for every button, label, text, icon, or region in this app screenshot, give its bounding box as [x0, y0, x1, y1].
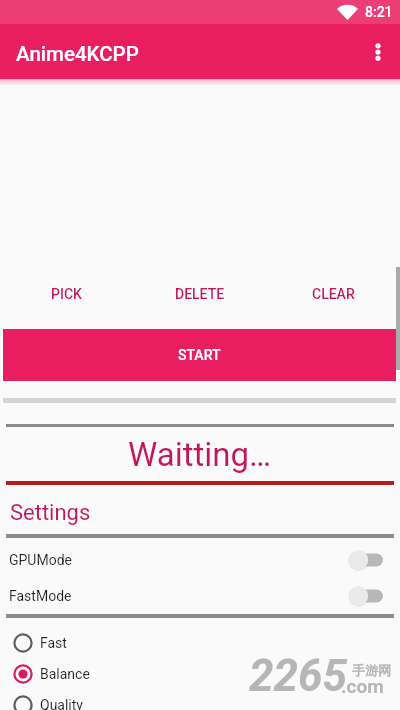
staticText: 8:21 [365, 4, 393, 20]
button[interactable]: PICK [0, 272, 133, 315]
button[interactable]: DELETE [133, 272, 266, 315]
staticText: Balance [40, 666, 90, 682]
button[interactable]: Balance [0, 659, 400, 688]
button[interactable]: Fast [0, 628, 400, 657]
button[interactable]: Quality [0, 690, 400, 710]
staticText: START [178, 347, 221, 363]
staticText: GPUMode [9, 552, 72, 568]
staticText: Settings [10, 500, 91, 526]
staticText: Fast [40, 635, 67, 651]
staticText: PICK [51, 286, 82, 302]
button[interactable]: GPUMode [0, 542, 400, 578]
staticText: FastMode [9, 588, 72, 604]
button[interactable]: FastMode [0, 578, 400, 614]
staticText: Anime4KCPP [16, 42, 139, 66]
button[interactable]: More options [356, 30, 400, 74]
staticText: 手游网 [352, 662, 391, 678]
staticText: CLEAR [312, 286, 355, 302]
staticText: .com [341, 675, 384, 697]
button[interactable]: CLEAR [266, 272, 400, 315]
button[interactable]: START [3, 329, 396, 381]
staticText: DELETE [175, 286, 225, 302]
staticText: 2265 [249, 650, 347, 702]
staticText: Quality [40, 697, 83, 710]
staticText: Waitting… [128, 435, 272, 474]
